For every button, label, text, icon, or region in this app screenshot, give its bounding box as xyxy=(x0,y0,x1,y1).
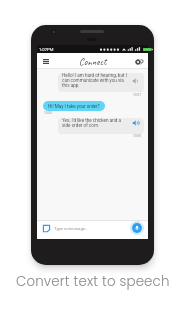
staticText: Yes, I'd like the chicken and a side ord… xyxy=(62,118,125,128)
button[interactable]: Settings xyxy=(133,55,146,68)
button[interactable]: Hello! I am hard of hearing, but I can c… xyxy=(58,73,144,92)
staticText: Convert text to speech xyxy=(16,272,170,291)
button[interactable]: Hi! May I take your order? xyxy=(43,101,105,111)
button[interactable]: Speak message xyxy=(129,220,145,236)
staticText: 13:08 xyxy=(133,134,141,138)
staticText: 13:08 xyxy=(44,111,52,115)
staticText: Type a message... xyxy=(54,226,129,231)
staticText: Hello! I am hard of hearing, but I can c… xyxy=(62,73,128,88)
staticText: Hi! May I take your order? xyxy=(48,104,100,109)
staticText: 13:07 xyxy=(133,93,141,97)
staticText: 1:07PM xyxy=(39,47,54,52)
button[interactable]: Open navigation menu xyxy=(39,55,52,68)
staticText: Connect xyxy=(79,55,107,68)
button[interactable]: Yes, I'd like the chicken and a side ord… xyxy=(58,118,144,134)
button[interactable]: Quick phrases xyxy=(41,223,51,233)
